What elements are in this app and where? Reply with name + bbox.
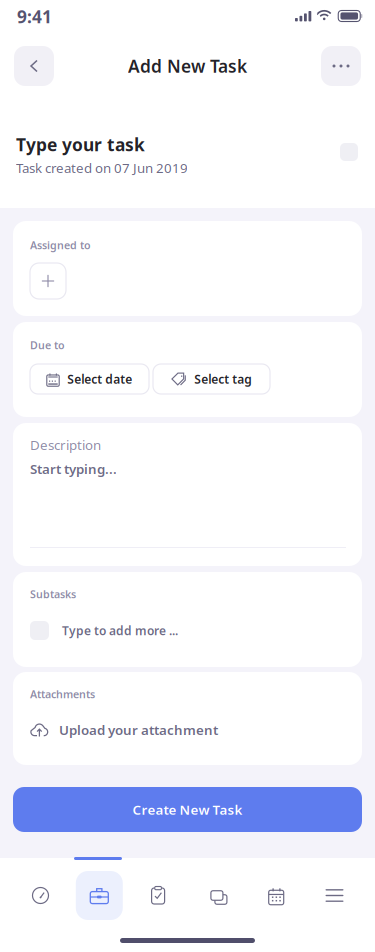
staticText: Subtasks xyxy=(30,587,76,601)
staticText: Type to add more ... xyxy=(62,622,178,638)
staticText: Create New Task xyxy=(132,801,242,818)
staticText: Upload your attachment xyxy=(59,721,218,739)
button[interactable]: Calendar xyxy=(252,871,299,920)
button[interactable]: Mark as complete xyxy=(340,143,358,161)
button[interactable]: Menu xyxy=(311,871,358,920)
button[interactable]: Type to add more ... xyxy=(30,621,178,640)
button[interactable]: Boards xyxy=(193,871,240,920)
button[interactable]: Select date xyxy=(30,364,149,394)
button[interactable]: Tasks xyxy=(135,871,182,920)
button[interactable]: More options xyxy=(321,46,361,86)
button[interactable]: Back xyxy=(14,46,54,86)
staticText: Due to xyxy=(30,338,65,352)
staticText: Start typing... xyxy=(30,460,117,478)
staticText: Type your task xyxy=(16,133,145,156)
button[interactable]: Projects xyxy=(76,871,123,920)
button[interactable]: Create New Task xyxy=(13,787,362,832)
button[interactable]: Add assignee xyxy=(30,263,66,299)
staticText: 9:41 xyxy=(17,5,52,28)
staticText: Attachments xyxy=(30,687,95,701)
button[interactable]: Dashboard xyxy=(17,871,64,920)
staticText: Assigned to xyxy=(30,238,91,252)
staticText: Description xyxy=(30,436,101,454)
staticText: Select date xyxy=(67,371,132,387)
staticText: Task created on 07 Jun 2019 xyxy=(16,159,188,177)
staticText: Select tag xyxy=(194,371,252,387)
staticText: Add New Task xyxy=(128,54,247,77)
button[interactable]: Upload your attachment xyxy=(30,721,218,739)
button[interactable]: Select tag xyxy=(153,364,270,394)
